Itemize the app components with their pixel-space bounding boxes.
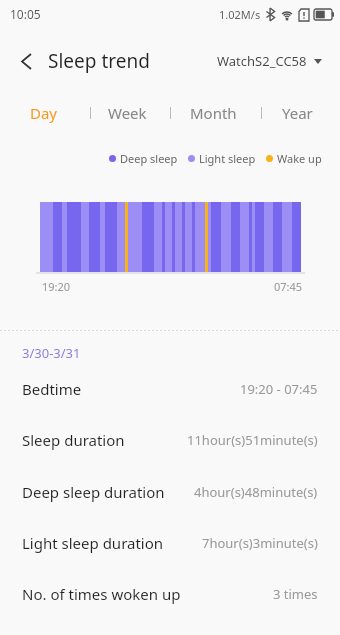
staticText: 19:20	[42, 279, 71, 294]
staticText: 11hour(s)51minute(s)	[187, 431, 318, 449]
staticText: WatchS2_CC58	[217, 52, 307, 70]
staticText: Deep sleep	[120, 151, 178, 166]
button[interactable]: Deep sleep duration	[22, 472, 318, 512]
staticText: 1.02M/s	[219, 7, 261, 22]
staticText: Deep sleep duration	[22, 482, 165, 502]
button[interactable]: Day	[30, 98, 58, 128]
button[interactable]: Week	[108, 98, 147, 128]
staticText: Light sleep	[199, 151, 256, 166]
staticText: Day	[30, 103, 58, 123]
staticText: Wake up	[277, 151, 322, 166]
button[interactable]: No. of times woken up	[22, 574, 318, 614]
button[interactable]: Year	[282, 98, 313, 128]
staticText: 07:45	[274, 279, 303, 294]
staticText: Light sleep duration	[22, 533, 164, 553]
button[interactable]: Sleep duration	[22, 420, 318, 460]
staticText: Sleep trend	[48, 48, 150, 74]
button[interactable]: Light sleep duration	[22, 523, 318, 563]
staticText: 7hour(s)3minute(s)	[202, 534, 318, 552]
button[interactable]	[12, 47, 40, 75]
staticText: 19:20 - 07:45	[240, 380, 318, 398]
staticText: Year	[282, 103, 313, 123]
staticText: No. of times woken up	[22, 584, 181, 604]
staticText: 10:05	[10, 6, 41, 22]
button[interactable]: Month	[190, 98, 237, 128]
button[interactable]: Bedtime	[22, 369, 318, 409]
button[interactable]: WatchS2_CC58	[217, 52, 322, 70]
staticText: 4hour(s)48minute(s)	[194, 483, 318, 501]
staticText: Week	[108, 103, 147, 123]
staticText: Month	[190, 103, 237, 123]
staticText: 3/30-3/31	[22, 344, 81, 362]
staticText: Bedtime	[22, 379, 82, 399]
staticText: Sleep duration	[22, 430, 125, 450]
staticText: 3 times	[273, 585, 318, 603]
